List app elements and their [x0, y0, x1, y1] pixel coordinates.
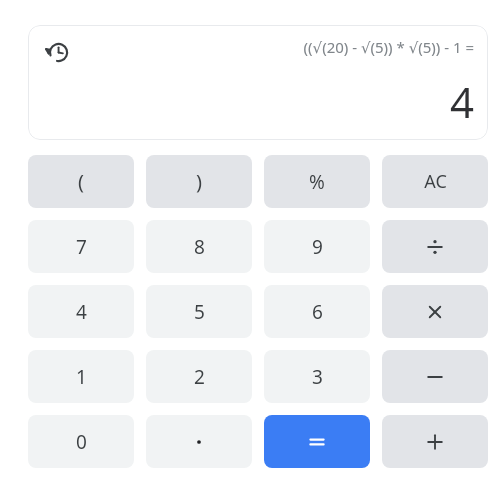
button[interactable]: Plus	[382, 415, 488, 468]
staticText: 3	[312, 364, 323, 390]
staticText: 6	[312, 299, 323, 325]
staticText: 1	[76, 364, 87, 390]
button[interactable]: (	[28, 155, 134, 208]
button[interactable]: 1	[28, 350, 134, 403]
staticText: 0	[76, 429, 87, 455]
staticText: %	[309, 169, 325, 195]
button[interactable]: Divide	[382, 220, 488, 273]
button[interactable]: 4	[28, 285, 134, 338]
staticText: 4	[449, 73, 474, 130]
staticText: AC	[424, 169, 447, 194]
staticText: 2	[194, 364, 205, 390]
staticText: ((√(20) - √(5)) * √(5)) - 1 =	[303, 37, 474, 57]
staticText: 4	[76, 299, 87, 325]
button[interactable]: History	[42, 37, 72, 67]
button[interactable]: 5	[146, 285, 252, 338]
staticText: 5	[194, 299, 205, 325]
button[interactable]: Equals	[264, 415, 370, 468]
staticText: )	[196, 168, 202, 195]
staticText: (	[78, 168, 84, 195]
button[interactable]: Decimal point	[146, 415, 252, 468]
button[interactable]: AC	[382, 155, 488, 208]
staticText: 8	[194, 234, 205, 260]
button[interactable]: 7	[28, 220, 134, 273]
button[interactable]: Multiply	[382, 285, 488, 338]
button[interactable]: 3	[264, 350, 370, 403]
button[interactable]: 2	[146, 350, 252, 403]
button[interactable]: 0	[28, 415, 134, 468]
button[interactable]: 9	[264, 220, 370, 273]
staticText: 7	[76, 234, 87, 260]
button[interactable]: )	[146, 155, 252, 208]
button[interactable]: 6	[264, 285, 370, 338]
staticText: 9	[312, 234, 323, 260]
button[interactable]: Minus	[382, 350, 488, 403]
button[interactable]: 8	[146, 220, 252, 273]
button[interactable]: %	[264, 155, 370, 208]
